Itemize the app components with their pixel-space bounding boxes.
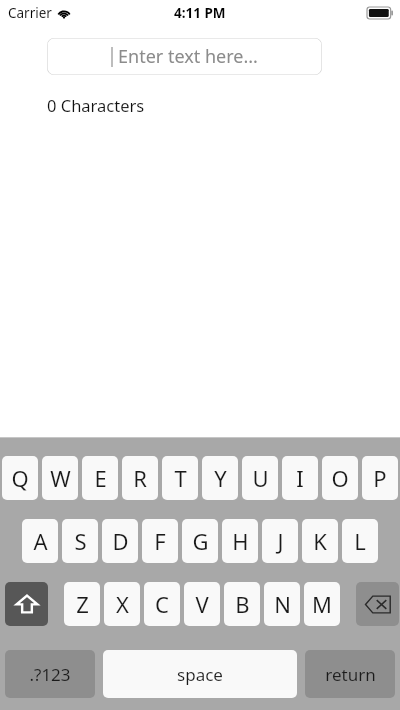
- staticText: F: [154, 526, 166, 556]
- staticText: Enter text here...: [118, 44, 258, 69]
- button[interactable]: R: [122, 456, 158, 500]
- staticText: S: [74, 526, 87, 556]
- staticText: T: [174, 463, 187, 493]
- staticText: G: [192, 526, 209, 556]
- staticText: N: [274, 589, 291, 619]
- staticText: H: [232, 526, 249, 556]
- button[interactable]: N: [264, 582, 300, 626]
- staticText: C: [155, 589, 169, 619]
- staticText: P: [373, 463, 387, 493]
- staticText: Carrier: [8, 4, 52, 22]
- button[interactable]: S: [62, 519, 98, 563]
- button[interactable]: E: [82, 456, 118, 500]
- button[interactable]: U: [242, 456, 278, 500]
- button[interactable]: P: [362, 456, 398, 500]
- button[interactable]: A: [22, 519, 58, 563]
- staticText: 4:11 PM: [174, 4, 226, 22]
- staticText: Q: [11, 463, 29, 493]
- button[interactable]: F: [142, 519, 178, 563]
- staticText: .?123: [29, 663, 71, 686]
- button[interactable]: O: [322, 456, 358, 500]
- staticText: L: [354, 526, 366, 556]
- button[interactable]: X: [104, 582, 140, 626]
- staticText: space: [177, 663, 223, 686]
- staticText: O: [331, 463, 349, 493]
- staticText: B: [235, 589, 250, 619]
- button[interactable]: C: [144, 582, 180, 626]
- staticText: return: [325, 663, 376, 686]
- button[interactable]: G: [182, 519, 218, 563]
- button[interactable]: return: [305, 650, 395, 698]
- button[interactable]: J: [262, 519, 298, 563]
- staticText: J: [277, 526, 284, 556]
- button[interactable]: K: [302, 519, 338, 563]
- staticText: W: [50, 463, 71, 493]
- button[interactable]: .?123: [5, 650, 95, 698]
- staticText: D: [112, 526, 129, 556]
- staticText: U: [252, 463, 269, 493]
- staticText: M: [312, 589, 332, 619]
- button[interactable]: Y: [202, 456, 238, 500]
- button[interactable]: D: [102, 519, 138, 563]
- staticText: I: [296, 463, 304, 493]
- button[interactable]: L: [342, 519, 378, 563]
- button[interactable]: Shift: [5, 582, 48, 626]
- staticText: V: [195, 589, 209, 619]
- button[interactable]: M: [304, 582, 340, 626]
- staticText: R: [133, 463, 147, 493]
- staticText: X: [116, 589, 129, 619]
- staticText: 0 Characters: [47, 94, 145, 116]
- button[interactable]: Z: [64, 582, 100, 626]
- staticText: Z: [76, 589, 89, 619]
- staticText: E: [94, 463, 107, 493]
- button[interactable]: H: [222, 519, 258, 563]
- staticText: K: [313, 526, 327, 556]
- staticText: A: [33, 526, 48, 556]
- button[interactable]: B: [224, 582, 260, 626]
- button[interactable]: V: [184, 582, 220, 626]
- button[interactable]: Q: [2, 456, 38, 500]
- staticText: Y: [214, 463, 227, 493]
- button[interactable]: I: [282, 456, 318, 500]
- button[interactable]: Backspace: [356, 582, 399, 626]
- button[interactable]: W: [42, 456, 78, 500]
- button[interactable]: space: [103, 650, 297, 698]
- button[interactable]: Enter text here...: [47, 38, 322, 75]
- button[interactable]: T: [162, 456, 198, 500]
